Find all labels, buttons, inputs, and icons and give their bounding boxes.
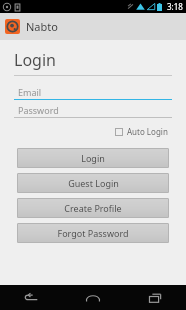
staticText: Forgot Password <box>57 227 129 239</box>
staticText: 3:18 <box>167 1 183 12</box>
staticText: Login <box>14 49 56 71</box>
staticText: Login <box>81 152 105 164</box>
button[interactable]: Email <box>14 85 172 100</box>
staticText: Create Profile <box>64 202 122 214</box>
staticText: Email <box>18 86 42 98</box>
button[interactable]: Home <box>62 285 124 310</box>
staticText: Nabto <box>26 19 58 34</box>
button[interactable]: Login <box>17 148 169 168</box>
button[interactable]: Recent apps <box>124 285 186 310</box>
button[interactable]: Guest Login <box>17 173 169 193</box>
button[interactable]: Back <box>0 285 62 310</box>
button[interactable]: Create Profile <box>17 198 169 218</box>
staticText: Guest Login <box>68 177 119 189</box>
button[interactable]: Password <box>14 103 172 118</box>
button[interactable]: Forgot Password <box>17 223 169 243</box>
staticText: Password <box>18 104 59 116</box>
button[interactable]: Auto Login <box>113 124 170 139</box>
staticText: Auto Login <box>127 126 168 137</box>
